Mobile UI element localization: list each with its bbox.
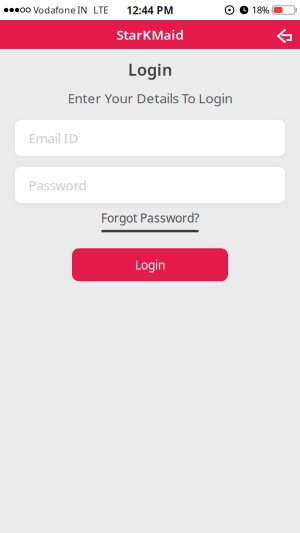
staticText: StarKMaid [116, 26, 183, 43]
staticText: Password [28, 176, 86, 194]
staticText: Email ID [28, 129, 78, 147]
button[interactable]: Password [0, 167, 300, 203]
staticText: Login [135, 257, 165, 273]
button[interactable]: Email ID [0, 120, 300, 156]
staticText: 12:44 PM [126, 3, 173, 17]
button[interactable]: Login [72, 248, 228, 281]
staticText: Vodafone IN [33, 4, 87, 16]
staticText: Enter Your Details To Login [67, 89, 232, 107]
staticText: Forgot Password? [101, 210, 199, 226]
button[interactable]: Forgot Password? [101, 210, 199, 232]
staticText: LTE [93, 4, 108, 16]
button[interactable]: Back [276, 25, 300, 43]
staticText: 18% [252, 4, 270, 16]
staticText: Login [128, 59, 172, 80]
